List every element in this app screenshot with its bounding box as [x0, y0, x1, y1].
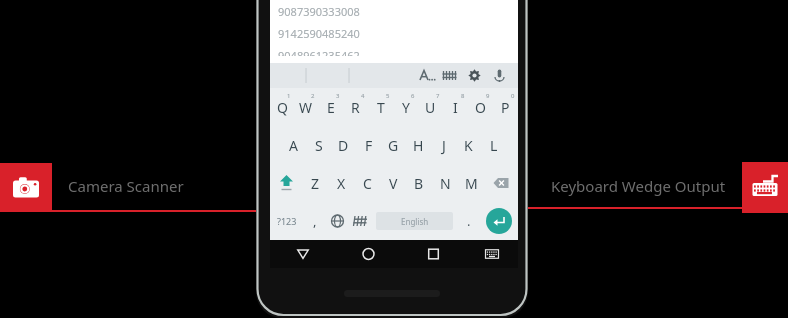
staticText: B	[414, 174, 424, 193]
staticText: W	[299, 98, 313, 117]
button[interactable]: Switch keyboard	[466, 240, 518, 268]
staticText: R	[351, 98, 360, 117]
button[interactable]: N	[432, 164, 458, 202]
button[interactable]: Text style	[412, 63, 437, 88]
button[interactable]: Recents	[401, 240, 466, 268]
staticText: Q	[277, 98, 288, 117]
button[interactable]: Home	[336, 240, 401, 268]
button[interactable]: C	[354, 164, 380, 202]
button[interactable]: Shift	[270, 164, 303, 202]
button[interactable]: Emoji	[349, 202, 372, 240]
button[interactable]: A	[281, 126, 306, 164]
staticText: S	[315, 136, 323, 155]
staticText: O	[475, 98, 486, 117]
button[interactable]: X	[328, 164, 354, 202]
staticText: U	[425, 98, 436, 117]
button[interactable]: Clipboard	[437, 63, 462, 88]
staticText: K	[464, 136, 473, 155]
staticText: 9087390333008	[278, 4, 360, 19]
staticText: English	[401, 216, 429, 227]
staticText: 3	[336, 92, 340, 100]
staticText: 4	[361, 92, 365, 100]
staticText: 6	[411, 92, 415, 100]
staticText: L	[490, 136, 498, 155]
button[interactable]: O	[468, 88, 493, 126]
staticText: 1	[287, 92, 291, 100]
button[interactable]: Enter	[480, 202, 518, 240]
button[interactable]: ,	[304, 202, 326, 240]
button[interactable]: English	[376, 212, 453, 230]
staticText: X	[337, 174, 346, 193]
button[interactable]: Camera Scanner	[0, 163, 52, 212]
button[interactable]: K	[456, 126, 481, 164]
button[interactable]: J	[431, 126, 456, 164]
button[interactable]: S	[306, 126, 331, 164]
button[interactable]: .	[457, 202, 480, 240]
button[interactable]: M	[458, 164, 484, 202]
staticText: H	[413, 136, 424, 155]
staticText: ,	[313, 212, 317, 230]
button[interactable]: Settings	[462, 63, 487, 88]
button[interactable]: Backspace	[484, 164, 518, 202]
button[interactable]: I	[443, 88, 468, 126]
button[interactable]: L	[481, 126, 506, 164]
staticText: P	[501, 98, 510, 117]
button[interactable]: Back	[270, 240, 336, 268]
staticText: 9048961235462	[278, 48, 360, 56]
button[interactable]: G	[381, 126, 406, 164]
staticText: Keyboard Wedge Output	[551, 176, 726, 196]
button[interactable]: D	[331, 126, 356, 164]
staticText: I	[453, 98, 458, 117]
staticText: J	[442, 136, 446, 155]
staticText: ?123	[277, 215, 297, 227]
staticText: Y	[402, 98, 410, 117]
button[interactable]: Language	[326, 202, 349, 240]
button[interactable]: ?123	[270, 202, 304, 240]
staticText: C	[363, 174, 372, 193]
staticText: 9142590485240	[278, 26, 360, 41]
staticText: 8	[461, 92, 465, 100]
button[interactable]: Y	[393, 88, 418, 126]
staticText: G	[388, 136, 399, 155]
staticText: D	[338, 136, 349, 155]
button[interactable]: U	[418, 88, 443, 126]
staticText: 7	[436, 92, 440, 100]
staticText: .	[467, 212, 471, 230]
button[interactable]: W	[294, 88, 318, 126]
staticText: 5	[386, 92, 390, 100]
staticText: E	[327, 98, 335, 117]
button[interactable]: Keyboard Wedge Output	[742, 162, 788, 213]
staticText: V	[389, 174, 398, 193]
button[interactable]: E	[318, 88, 343, 126]
button[interactable]: R	[343, 88, 368, 126]
button[interactable]: P	[493, 88, 518, 126]
staticText: A	[289, 136, 298, 155]
button[interactable]: Q	[270, 88, 294, 126]
staticText: 0	[511, 92, 515, 100]
staticText: F	[365, 136, 373, 155]
staticText: 9	[486, 92, 490, 100]
button[interactable]: H	[406, 126, 431, 164]
button[interactable]: V	[380, 164, 406, 202]
staticText: 2	[311, 92, 315, 100]
button[interactable]: Z	[303, 164, 328, 202]
button[interactable]: T	[368, 88, 393, 126]
staticText: N	[440, 174, 451, 193]
staticText: T	[377, 98, 385, 117]
staticText: Z	[311, 174, 320, 193]
button[interactable]: B	[406, 164, 432, 202]
button[interactable]: Voice input	[487, 63, 512, 88]
button[interactable]: F	[356, 126, 381, 164]
staticText: M	[465, 174, 478, 193]
staticText: Camera Scanner	[68, 176, 184, 196]
